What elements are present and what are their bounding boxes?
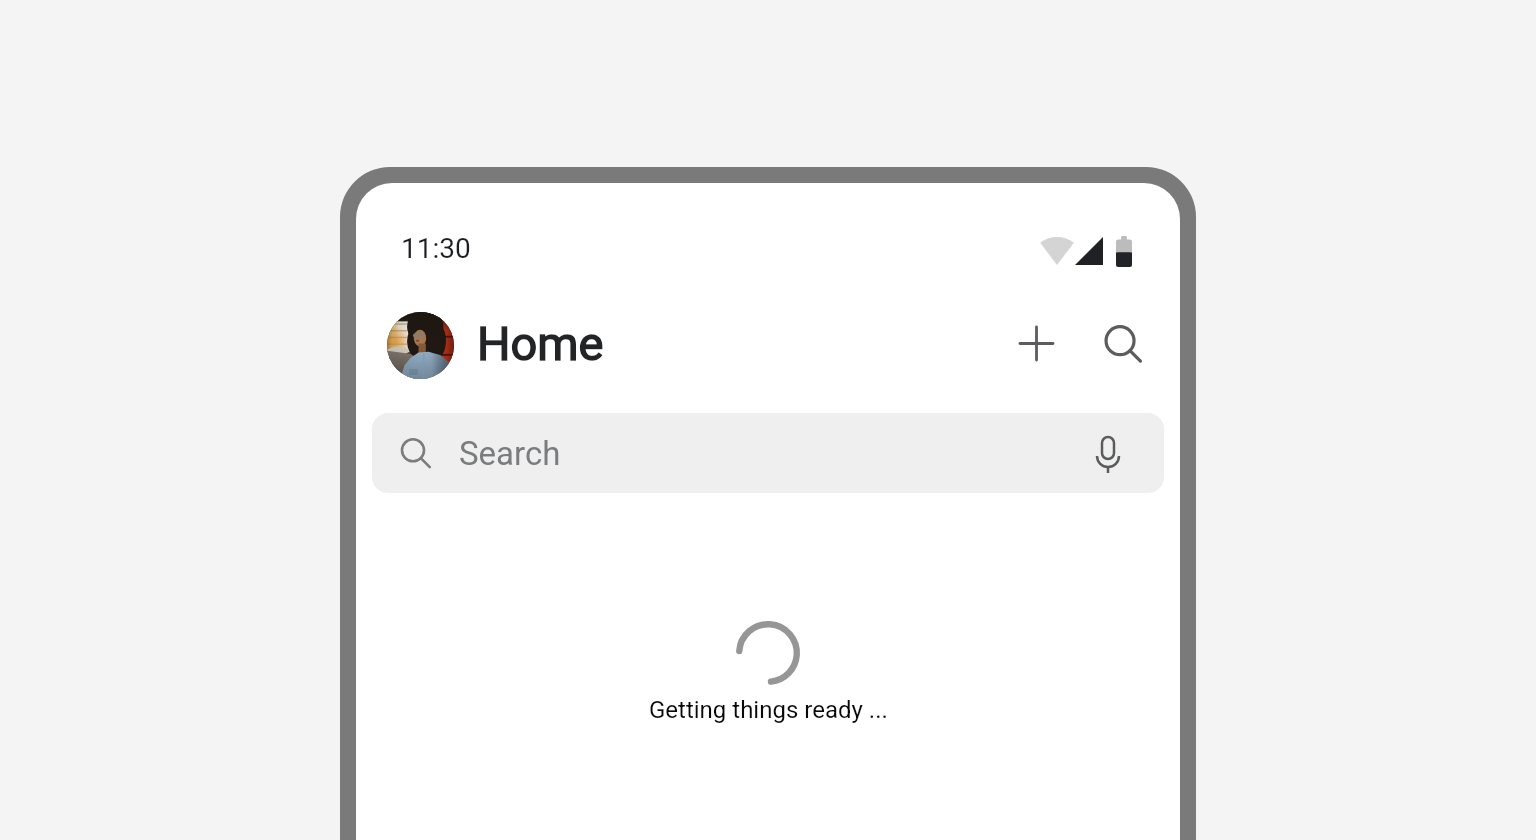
button[interactable]: Search: [1094, 316, 1154, 376]
button[interactable]: Add: [1007, 314, 1066, 373]
staticText: 11:30: [401, 232, 471, 265]
staticText: Search: [459, 434, 561, 473]
staticText: Getting things ready ...: [649, 696, 888, 724]
button[interactable]: Voice search: [1084, 423, 1132, 483]
button[interactable]: Profile: [387, 312, 454, 379]
staticText: Home: [477, 316, 604, 371]
button[interactable]: Search: [372, 413, 1164, 493]
